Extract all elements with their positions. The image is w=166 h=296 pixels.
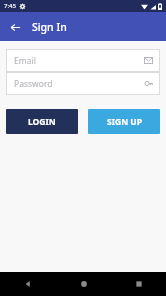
button[interactable]: Back [0, 272, 56, 296]
staticText: SIGN UP [107, 116, 142, 128]
staticText: Email [14, 55, 36, 67]
button[interactable]: Home [56, 272, 111, 296]
other: Email [144, 57, 153, 64]
button[interactable]: Recent apps [111, 272, 166, 296]
other: Show password [144, 80, 153, 87]
staticText: 7:45 [4, 2, 16, 10]
button[interactable]: SIGN UP [88, 109, 160, 134]
button[interactable]: Email [6, 49, 160, 72]
staticText: Password [14, 78, 53, 90]
staticText: LOGIN [28, 116, 56, 128]
button[interactable]: Password [6, 72, 160, 95]
staticText: Sign In [32, 20, 67, 34]
button[interactable]: LOGIN [6, 109, 78, 134]
button[interactable]: Back [6, 18, 24, 36]
